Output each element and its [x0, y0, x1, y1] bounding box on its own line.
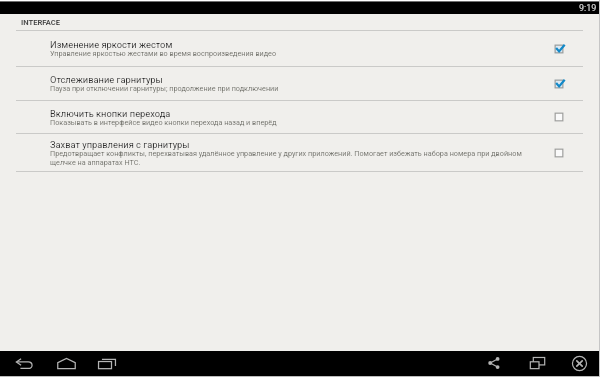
staticText: Изменение яркости жестом [50, 39, 173, 50]
staticText: Захват управления с гарнитуры [50, 139, 190, 150]
button[interactable]: Home [53, 351, 79, 375]
staticText: Пауза при отключении гарнитуры; продолже… [50, 84, 279, 92]
button[interactable]: Изменение яркости жестом [0, 31, 600, 66]
staticText: INTERFACE [21, 18, 61, 27]
staticText: Включить кнопки перехода [50, 108, 171, 119]
button[interactable]: Toggle setting [551, 145, 567, 161]
button[interactable]: Toggle setting [551, 41, 567, 57]
staticText: Предотвращает конфликты, перехватывая уд… [50, 149, 522, 157]
button[interactable]: Отслеживание гарнитуры [0, 67, 600, 100]
staticText: Управление яркостью жестами во время вос… [50, 49, 277, 57]
staticText: 9:19 [579, 3, 597, 14]
staticText: Отслеживание гарнитуры [50, 74, 163, 85]
staticText: щелчке на аппаратах HTC. [50, 158, 141, 166]
button[interactable]: Recent apps [94, 351, 120, 375]
button[interactable]: Share [481, 351, 507, 375]
button[interactable]: Toggle setting [551, 109, 567, 125]
button[interactable]: Включить кнопки перехода [0, 101, 600, 133]
button[interactable]: Захват управления с гарнитуры [0, 134, 600, 171]
button[interactable]: Back [11, 351, 37, 375]
button[interactable]: Close [566, 351, 592, 375]
staticText: Показывать в интерфейсе видео кнопки пер… [50, 118, 277, 126]
button[interactable]: Cast screen [524, 351, 550, 375]
button[interactable]: Toggle setting [551, 76, 567, 92]
